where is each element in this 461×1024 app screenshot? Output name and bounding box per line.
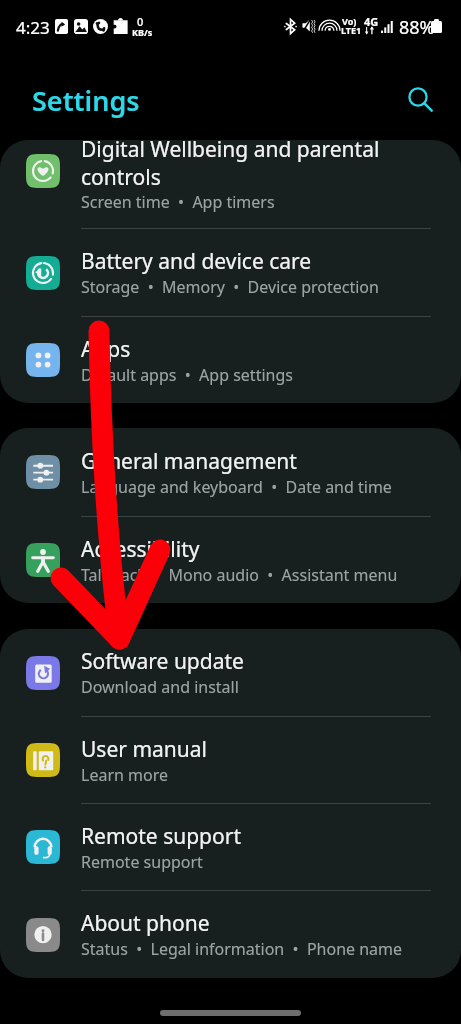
staticText: Accessibility	[81, 535, 200, 564]
staticText: Battery and device care	[81, 247, 312, 276]
staticText: About phone	[81, 909, 210, 938]
button[interactable]: Battery and device care	[0, 229, 461, 316]
staticText: 0	[137, 14, 144, 29]
staticText: Vo)	[342, 15, 357, 27]
staticText: KB/s	[132, 26, 153, 38]
button[interactable]: Accessibility	[0, 517, 461, 603]
staticText: Software update	[81, 647, 244, 676]
staticText: Remote support	[81, 822, 241, 851]
staticText: Status • Legal information • Phone name	[81, 938, 403, 960]
staticText: General management	[81, 447, 297, 476]
staticText: Default apps • App settings	[81, 364, 293, 386]
staticText: LTE1	[341, 24, 362, 36]
staticText: 88%	[399, 15, 435, 40]
staticText: Settings	[32, 82, 140, 119]
staticText: Screen time • App timers	[81, 191, 275, 213]
staticText: TalkBack • Mono audio • Assistant menu	[81, 564, 398, 586]
staticText: Remote support	[81, 851, 203, 873]
button[interactable]: Remote support	[0, 804, 461, 890]
staticText: 4G	[364, 14, 379, 29]
button[interactable]: General management	[0, 428, 461, 516]
staticText: Language and keyboard • Date and time	[81, 476, 392, 498]
staticText: 4:23	[16, 16, 50, 39]
button[interactable]: User manual	[0, 717, 461, 803]
staticText: Download and install	[81, 676, 239, 698]
button[interactable]: Apps	[0, 317, 461, 403]
staticText: Storage • Memory • Device protection	[81, 276, 379, 298]
button[interactable]: About phone	[0, 891, 461, 978]
button[interactable]: Search	[398, 77, 442, 121]
staticText: User manual	[81, 735, 207, 764]
staticText: Digital Wellbeing and parental controls	[81, 140, 433, 191]
staticText: Learn more	[81, 764, 168, 786]
button[interactable]: Software update	[0, 629, 461, 716]
staticText: Apps	[81, 335, 131, 364]
button[interactable]: Digital Wellbeing and parental controls	[0, 140, 461, 228]
